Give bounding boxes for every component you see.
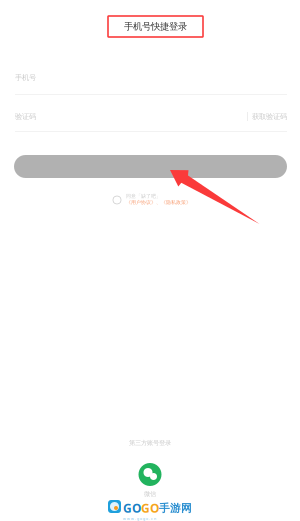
button[interactable] bbox=[14, 155, 287, 178]
button[interactable]: 获取验证码 bbox=[252, 112, 287, 121]
staticText: w w w . g o g o . c n bbox=[123, 516, 156, 521]
staticText: 手机号快捷登录 bbox=[124, 21, 187, 32]
staticText: 《用户协议》、《隐私政策》 bbox=[126, 199, 191, 205]
button[interactable]: 微信 bbox=[138, 463, 161, 498]
staticText: 手游网 bbox=[159, 501, 192, 515]
staticText: GO bbox=[141, 500, 159, 516]
staticText: 同意「缺了吧」 bbox=[126, 193, 161, 199]
button[interactable]: 手机号快捷登录 bbox=[108, 16, 203, 37]
staticText: 获取验证码 bbox=[252, 112, 287, 121]
staticText: 手机号 bbox=[15, 73, 36, 82]
staticText: 微信 bbox=[144, 490, 156, 498]
button[interactable]: 同意「缺了吧」 bbox=[113, 193, 191, 205]
staticText: 第三方账号登录 bbox=[129, 439, 171, 447]
staticText: 验证码 bbox=[15, 112, 36, 121]
staticText: GO bbox=[123, 500, 141, 516]
